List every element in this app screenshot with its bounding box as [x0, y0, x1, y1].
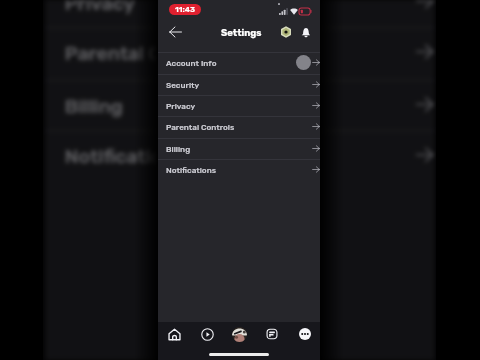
button[interactable]: Privacy: [46, 0, 434, 26]
button[interactable]: Notifications: [46, 130, 434, 180]
button[interactable]: Profile: [227, 322, 251, 346]
button[interactable]: Back: [165, 22, 185, 42]
button[interactable]: Notifications: [158, 159, 320, 180]
staticText: 11:43: [175, 5, 195, 14]
staticText: Settings: [221, 27, 262, 38]
staticText: Privacy: [166, 101, 196, 111]
button[interactable]: Security: [158, 74, 320, 95]
button[interactable]: Billing: [46, 79, 434, 130]
staticText: Notifications: [166, 165, 217, 175]
staticText: Security: [166, 80, 200, 90]
staticText: Parental Controls: [166, 122, 235, 132]
button[interactable]: Parental Controls: [46, 26, 434, 77]
button[interactable]: More: [293, 322, 317, 346]
button[interactable]: Billing: [158, 138, 320, 159]
button[interactable]: Home: [162, 322, 186, 346]
button[interactable]: Messages: [260, 322, 284, 346]
staticText: Account Info: [166, 58, 217, 68]
staticText: Billing: [166, 144, 191, 154]
button[interactable]: Parental Controls: [158, 116, 320, 137]
staticText: Notifications: [65, 144, 187, 168]
staticText: Parental Controls: [65, 41, 230, 65]
button[interactable]: Privacy: [158, 95, 320, 116]
button[interactable]: Rewards: [279, 25, 293, 39]
button[interactable]: Shorts: [195, 322, 219, 346]
button[interactable]: Account Info: [158, 52, 320, 73]
staticText: Privacy: [65, 0, 137, 14]
staticText: Billing: [65, 94, 125, 118]
button[interactable]: Notifications: [299, 25, 313, 39]
